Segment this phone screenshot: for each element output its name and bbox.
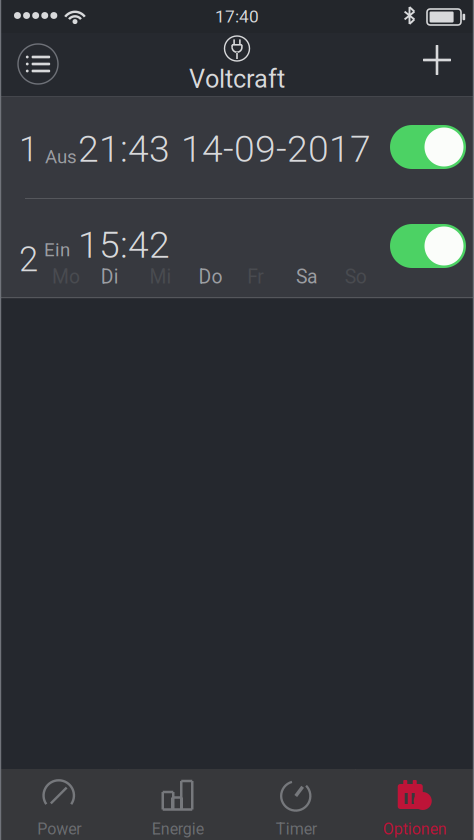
staticText: Ein <box>44 239 70 261</box>
staticText: So <box>345 266 367 288</box>
staticText: Optionen <box>383 820 447 838</box>
staticText: Di <box>101 266 119 288</box>
button[interactable]: Menu <box>6 36 70 92</box>
staticText: 2 <box>19 239 38 280</box>
staticText: Mo <box>52 266 80 288</box>
staticText: Aus <box>45 146 77 168</box>
staticText: Mi <box>150 266 172 288</box>
staticText: 1 <box>19 129 38 170</box>
button[interactable]: Power <box>0 769 118 840</box>
staticText: Do <box>198 266 222 288</box>
staticText: 17:40 <box>215 6 259 27</box>
staticText: Energie <box>152 820 204 838</box>
button[interactable]: Timer <box>237 769 355 840</box>
staticText: Timer <box>276 820 317 838</box>
button[interactable]: Optionen <box>355 769 474 840</box>
button[interactable]: 1 <box>0 97 474 198</box>
staticText: 14-09-2017 <box>181 127 371 171</box>
staticText: Sa <box>296 266 318 288</box>
staticText: Fr <box>247 266 264 288</box>
button[interactable]: Energie <box>118 769 237 840</box>
button[interactable]: Add <box>407 32 467 88</box>
button[interactable]: 2 <box>0 199 474 298</box>
staticText: 21:43 <box>78 127 170 171</box>
staticText: 15:42 <box>78 223 170 267</box>
staticText: Voltcraft <box>189 64 285 94</box>
staticText: Power <box>37 820 81 838</box>
